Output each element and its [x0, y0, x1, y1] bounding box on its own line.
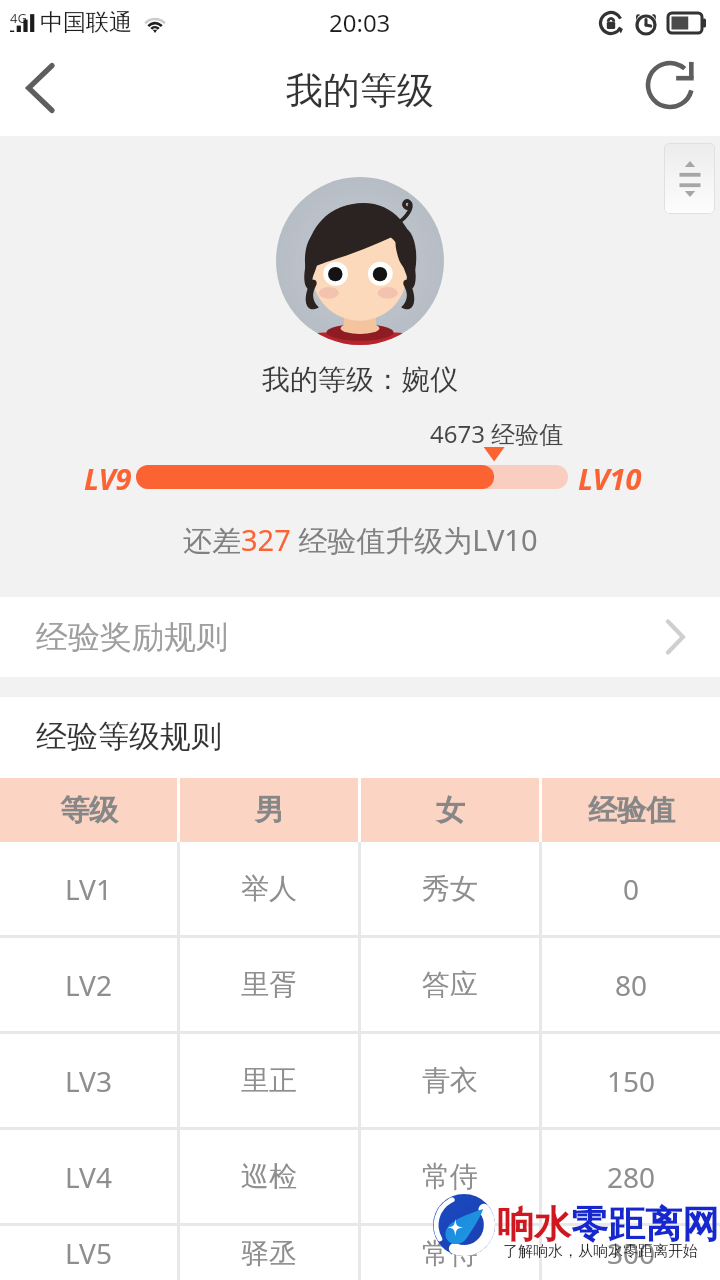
- staticText: LV10: [578, 459, 642, 498]
- staticText: 里正: [241, 1063, 297, 1098]
- staticText: LV4: [65, 1158, 112, 1196]
- staticText: 中国联通: [40, 8, 132, 37]
- staticText: LV9: [84, 459, 132, 498]
- staticText: 80: [615, 966, 648, 1004]
- button[interactable]: 经验奖励规则: [0, 597, 720, 677]
- staticText: 4673 经验值: [430, 417, 564, 450]
- staticText: 常侍: [422, 1159, 478, 1194]
- staticText: 经验值: [588, 792, 675, 829]
- staticText: 了解响水，从响水零距离开始: [503, 1242, 698, 1261]
- staticText: 青衣: [422, 1063, 478, 1098]
- staticText: 300: [607, 1234, 656, 1272]
- staticText: 我的等级: [286, 67, 434, 114]
- button[interactable]: Scroll: [664, 143, 715, 214]
- staticText: 常侍: [422, 1236, 478, 1271]
- staticText: LV3: [65, 1062, 112, 1100]
- staticText: 等级: [60, 792, 118, 829]
- staticText: 答应: [422, 967, 478, 1002]
- staticText: LV2: [65, 966, 112, 1004]
- staticText: 零距离网: [571, 1201, 719, 1248]
- staticText: 280: [607, 1158, 656, 1196]
- staticText: LV1: [65, 870, 112, 908]
- staticText: 男: [255, 792, 284, 829]
- staticText: 20:03: [329, 6, 391, 39]
- staticText: 秀女: [422, 871, 478, 906]
- staticText: 经验奖励规则: [36, 617, 228, 657]
- staticText: 里胥: [241, 967, 297, 1002]
- staticText: 响水: [497, 1201, 571, 1248]
- button[interactable]: Refresh: [632, 45, 720, 136]
- button[interactable]: Back: [0, 45, 80, 136]
- staticText: 巡检: [241, 1159, 297, 1194]
- staticText: 经验等级规则: [36, 717, 222, 756]
- staticText: 举人: [241, 871, 297, 906]
- staticText: 驿丞: [241, 1236, 297, 1271]
- staticText: 4G: [10, 9, 27, 27]
- staticText: 0: [623, 870, 640, 908]
- staticText: 还差327 经验值升级为LV10: [183, 520, 538, 560]
- staticText: 女: [436, 792, 465, 829]
- staticText: 150: [607, 1062, 656, 1100]
- staticText: 我的等级：婉仪: [262, 362, 458, 397]
- staticText: LV5: [65, 1234, 112, 1272]
